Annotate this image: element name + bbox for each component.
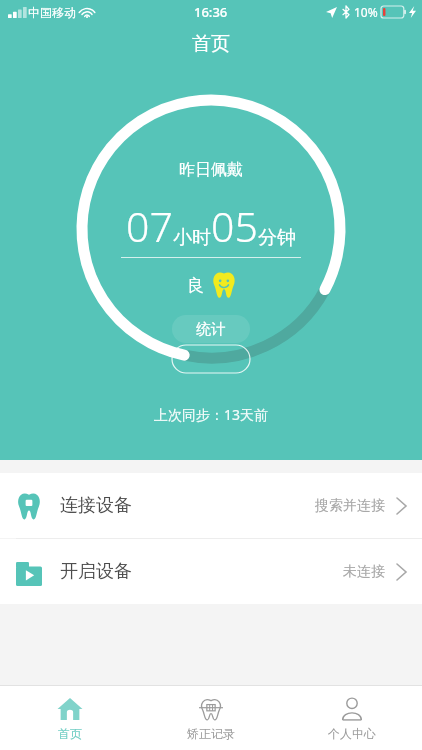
staticText: 统计 [196, 320, 226, 339]
staticText: 个人中心 [328, 726, 376, 741]
staticText: 中国移动 [28, 5, 76, 20]
button[interactable]: 首页 [0, 686, 140, 750]
staticText: 矫正记录 [187, 726, 235, 741]
staticText: 首页 [192, 32, 230, 56]
staticText: 16:36 [194, 3, 228, 21]
staticText: 未连接 [343, 563, 385, 581]
staticText: 上次同步：13天前 [154, 405, 269, 424]
staticText: 搜索并连接 [315, 497, 385, 515]
button[interactable]: 个人中心 [281, 686, 422, 750]
button[interactable]: 矫正记录 [140, 686, 281, 750]
staticText: 开启设备 [60, 560, 132, 583]
staticText: 分钟 [258, 226, 296, 250]
staticText: 小时 [173, 226, 211, 250]
staticText: 昨日佩戴 [179, 160, 243, 180]
button[interactable]: 统计 [172, 315, 250, 343]
staticText: 首页 [58, 726, 82, 741]
staticText: 05 [211, 198, 258, 254]
button[interactable]: 开启设备 [0, 539, 422, 604]
staticText: 良 [187, 275, 204, 296]
staticText: 10% [354, 4, 378, 20]
staticText: 连接设备 [60, 494, 132, 517]
staticText: 07 [126, 198, 173, 254]
button[interactable]: 连接设备 [0, 473, 422, 538]
